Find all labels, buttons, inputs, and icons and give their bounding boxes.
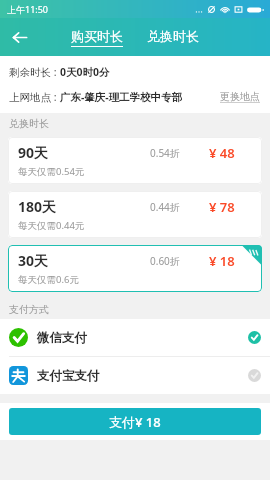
staticText: 支付宝支付 [37, 368, 100, 384]
staticText: ¥ 18 [209, 252, 235, 270]
staticText: 0.54折 [150, 146, 180, 160]
staticText: 兑换时长 [9, 117, 49, 130]
staticText: 30天 [18, 251, 49, 270]
staticText: 90天 [18, 143, 49, 162]
staticText: 0天0时0分 [60, 65, 110, 79]
staticText: 0.60折 [150, 254, 180, 268]
staticText: ¥ 78 [209, 198, 235, 216]
button[interactable]: 兑换时长 [144, 25, 202, 50]
staticText: 0.44折 [150, 200, 180, 214]
staticText: 微信支付 [37, 330, 87, 346]
button[interactable]: 支付¥ 18 [9, 408, 261, 435]
button[interactable]: 支付宝支付 [0, 357, 270, 394]
button[interactable]: 90天 [8, 137, 262, 184]
staticText: 更换地点 [220, 90, 260, 103]
staticText: 上网地点 : [9, 90, 60, 104]
staticText: 每天仅需0.44元 [18, 219, 85, 232]
staticText: 上午11:50 [7, 3, 49, 15]
button[interactable]: Back [0, 18, 38, 56]
staticText: 购买时长 [71, 28, 123, 44]
staticText: ¥ 48 [209, 144, 235, 162]
staticText: 剩余时长 : [9, 65, 60, 79]
staticText: 180天 [18, 197, 57, 216]
staticText: 兑换时长 [147, 28, 199, 44]
staticText: 每天仅需0.54元 [18, 165, 85, 178]
button[interactable]: 购买时长 [68, 25, 126, 50]
button[interactable]: 微信支付 [0, 319, 270, 356]
staticText: 支付方式 [9, 303, 49, 316]
button[interactable]: 180天 [8, 191, 262, 238]
staticText: 每天仅需0.6元 [18, 273, 79, 286]
staticText: 广东-肇庆-理工学校中专部 [60, 90, 183, 104]
button[interactable]: 30天 [8, 245, 262, 292]
staticText: 支付¥ 18 [109, 413, 161, 431]
button[interactable]: 更换地点 [218, 88, 262, 105]
